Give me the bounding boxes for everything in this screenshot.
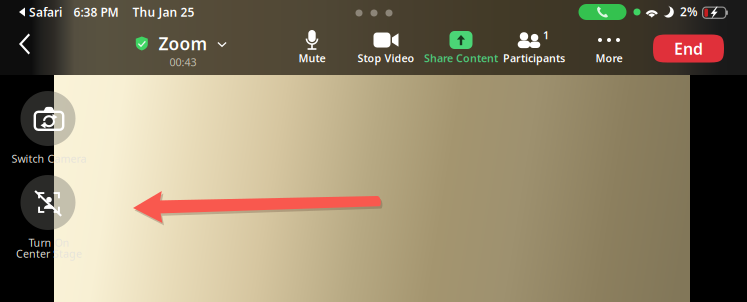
button[interactable]: Back bbox=[2, 22, 46, 66]
staticText: Switch Camera bbox=[11, 151, 86, 166]
staticText: Zoom bbox=[158, 32, 207, 55]
button[interactable]: Zoom bbox=[135, 33, 231, 75]
button[interactable]: Stop Video bbox=[346, 25, 426, 67]
staticText: Safari bbox=[29, 4, 62, 20]
staticText: Participants bbox=[503, 51, 565, 65]
staticText: 2% bbox=[680, 3, 698, 19]
button[interactable]: Share Content bbox=[421, 25, 501, 67]
button[interactable]: End bbox=[653, 34, 724, 62]
staticText: Share Content bbox=[424, 51, 498, 65]
button[interactable]: Mute bbox=[272, 25, 352, 67]
staticText: Turn On bbox=[28, 235, 69, 250]
staticText: 6:38 PM bbox=[73, 4, 118, 20]
staticText: End bbox=[674, 38, 703, 59]
staticText: More bbox=[595, 51, 622, 65]
button[interactable]: Switch Camera bbox=[0, 89, 104, 183]
button[interactable]: 1 bbox=[494, 25, 574, 67]
staticText: Thu Jan 25 bbox=[132, 4, 194, 20]
button[interactable]: Turn On bbox=[0, 173, 104, 267]
staticText: Center Stage bbox=[16, 246, 82, 261]
button[interactable]: Safari bbox=[19, 3, 62, 21]
staticText: Stop Video bbox=[357, 51, 414, 65]
staticText: 00:43 bbox=[169, 55, 196, 69]
button[interactable]: More bbox=[569, 25, 649, 67]
staticText: 1 bbox=[543, 28, 549, 42]
staticText: Mute bbox=[298, 51, 325, 65]
